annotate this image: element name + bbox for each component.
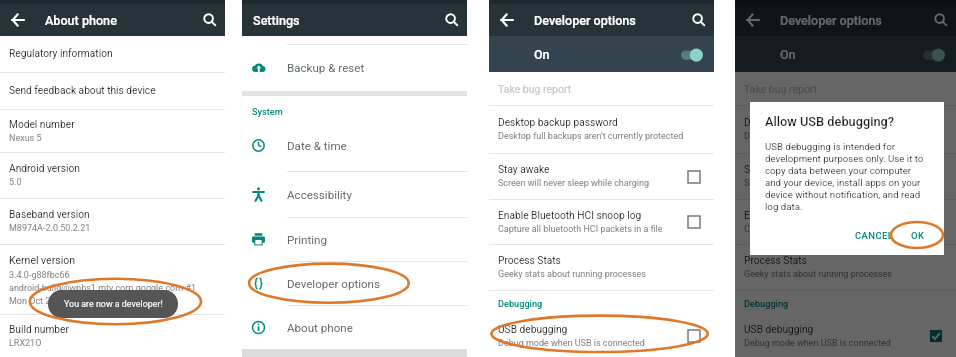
button[interactable]: OK — [905, 226, 931, 245]
button[interactable]: Send feedback about this device — [0, 73, 225, 109]
staticText: Android version — [9, 163, 80, 175]
button[interactable]: Back — [740, 7, 766, 33]
button[interactable]: Stay awake — [735, 154, 956, 199]
staticText: Debug mode when USB is connected — [498, 338, 645, 349]
button[interactable]: Enable Bluetooth HCI snoop log — [930, 216, 942, 228]
button[interactable]: Process Stats — [489, 245, 714, 290]
staticText: Debug mode when USB is connected — [744, 338, 891, 349]
staticText: Send feedback about this device — [9, 85, 156, 97]
staticText: Stay awake — [498, 164, 550, 176]
staticText: Enable Bluetooth HCI snoop log — [498, 210, 642, 222]
staticText: Build number — [9, 324, 69, 336]
staticText: Settings — [253, 13, 300, 28]
staticText: Geeky stats about running processes — [498, 269, 646, 280]
staticText: Debugging — [744, 298, 789, 309]
button[interactable]: Back — [5, 7, 31, 33]
button[interactable]: Enable Bluetooth HCI snoop log — [489, 200, 714, 244]
button[interactable]: Printing — [242, 218, 467, 261]
button[interactable]: USB debugging — [735, 315, 956, 357]
staticText: USB debugging is intended for developmen… — [765, 141, 928, 212]
staticText: Kernel version — [9, 254, 76, 266]
staticText: Enable Bluetooth HCI snoop log — [744, 210, 888, 222]
staticText: Screen will never sleep while charging — [498, 178, 649, 189]
button[interactable]: Enable Bluetooth HCI snoop log — [688, 216, 700, 228]
staticText: You are now a developer! — [64, 299, 163, 309]
staticText: Capture all bluetooth HCI packets in a f… — [498, 224, 663, 235]
button[interactable]: Stay awake — [489, 154, 714, 199]
staticText: Backup & reset — [287, 61, 365, 75]
staticText: CANCEL — [855, 230, 894, 241]
staticText: Regulatory information — [9, 48, 113, 60]
button[interactable]: Android version — [0, 153, 225, 198]
button[interactable]: About phone — [242, 306, 467, 349]
staticText: Date & time — [287, 139, 347, 153]
button[interactable]: On — [489, 36, 714, 72]
staticText: Desktop full backups aren't currently pr… — [498, 131, 684, 142]
button[interactable]: Search — [439, 7, 465, 33]
button[interactable]: Stay awake — [688, 171, 700, 183]
staticText: Desktop backup password — [498, 117, 618, 129]
staticText: USB debugging — [498, 324, 568, 336]
staticText: Process Stats — [498, 255, 561, 267]
button[interactable]: USB debugging — [688, 330, 700, 342]
staticText: USB debugging — [744, 324, 814, 336]
button[interactable]: USB debugging — [489, 315, 714, 357]
button[interactable]: Process Stats — [735, 245, 956, 290]
staticText: On — [780, 47, 796, 62]
button[interactable]: Back — [494, 7, 520, 33]
button[interactable]: Developer options — [242, 262, 467, 305]
staticText: Nexus 5 — [9, 133, 42, 144]
staticText: Process Stats — [744, 255, 807, 267]
staticText: Developer options — [534, 13, 636, 28]
button[interactable]: Date & time — [242, 120, 467, 171]
staticText: Model number — [9, 119, 75, 131]
staticText: Capture all bluetooth HCI packets in a f… — [744, 224, 909, 235]
button[interactable]: Desktop backup password — [735, 106, 956, 153]
staticText: Baseband version — [9, 209, 90, 221]
button[interactable]: Desktop backup password — [489, 106, 714, 153]
staticText: Screen will never sleep while charging — [744, 178, 895, 189]
other: Developer options toggle — [923, 46, 945, 62]
staticText: About phone — [45, 13, 117, 28]
button[interactable]: CANCEL — [849, 226, 900, 245]
staticText: 3.4.0-g88fbc66 — [9, 270, 70, 281]
staticText: OK — [911, 230, 925, 241]
button[interactable]: Enable Bluetooth HCI snoop log — [735, 200, 956, 244]
staticText: System — [252, 106, 283, 117]
button[interactable]: USB debugging — [930, 330, 942, 342]
staticText: M8974A-2.0.50.2.21 — [9, 223, 91, 234]
button[interactable]: Search — [197, 7, 223, 33]
staticText: Developer options — [780, 13, 882, 28]
button[interactable]: Baseband version — [0, 199, 225, 244]
button[interactable]: Accessibility — [242, 172, 467, 217]
staticText: Take bug report — [498, 83, 572, 95]
staticText: Mon Oct 20 20:18:01 UTC 2014 — [9, 296, 134, 307]
button[interactable]: Build number — [0, 315, 225, 357]
staticText: Developer options — [287, 277, 380, 291]
button[interactable]: Backup & reset — [242, 45, 467, 91]
button[interactable]: Search — [686, 7, 712, 33]
button[interactable]: Search — [928, 7, 954, 33]
staticText: On — [534, 47, 550, 62]
staticText: About phone — [287, 321, 353, 335]
staticText: Desktop full backups aren't currently pr… — [744, 131, 930, 142]
button[interactable]: Regulatory information — [0, 36, 225, 72]
button[interactable]: On — [735, 36, 956, 72]
staticText: Desktop backup password — [744, 117, 864, 129]
staticText: 5.0 — [9, 177, 22, 188]
staticText: Accessibility — [287, 188, 352, 202]
staticText: Allow USB debugging? — [765, 114, 895, 129]
staticText: Take bug report — [744, 83, 818, 95]
staticText: Stay awake — [744, 164, 796, 176]
staticText: Debugging — [498, 298, 543, 309]
button[interactable]: Kernel version — [0, 245, 225, 314]
staticText: Geeky stats about running processes — [744, 269, 892, 280]
other: Developer options toggle — [681, 46, 703, 62]
staticText: Printing — [287, 233, 327, 247]
staticText: LRX21O — [9, 338, 42, 349]
button[interactable]: Model number — [0, 110, 225, 152]
staticText: android-build@wpbs1.mtv.corp.google.com … — [9, 283, 196, 294]
